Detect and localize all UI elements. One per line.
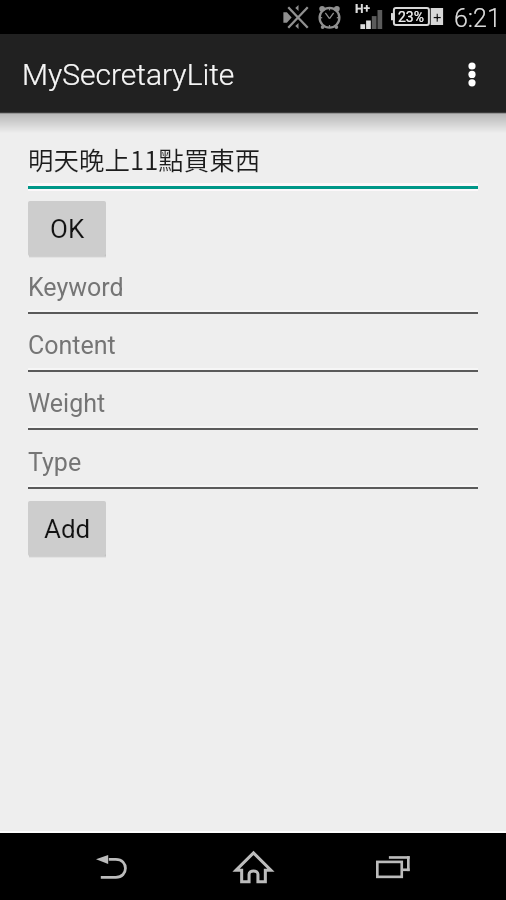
button[interactable]: More options	[444, 34, 500, 112]
button[interactable]: Type	[28, 442, 478, 489]
button[interactable]: Keyword	[28, 267, 478, 314]
button[interactable]: OK	[28, 201, 106, 256]
staticText: 明天晚上11點買東西	[28, 140, 261, 177]
staticText: H+	[355, 2, 371, 16]
staticText: MySecretaryLite	[22, 57, 235, 92]
staticText: Content	[28, 331, 116, 360]
staticText: Weight	[28, 389, 106, 418]
staticText: 6:21	[454, 4, 501, 33]
staticText: +	[433, 9, 442, 26]
staticText: Keyword	[28, 273, 124, 302]
button[interactable]: Back	[78, 833, 146, 900]
button[interactable]: Home	[219, 833, 287, 900]
button[interactable]: Content	[28, 325, 478, 372]
button[interactable]: Add	[28, 501, 106, 556]
button[interactable]: Weight	[28, 383, 478, 430]
staticText: Type	[28, 448, 82, 477]
staticText: OK	[50, 214, 85, 244]
staticText: 23%	[398, 9, 424, 25]
button[interactable]: Recent apps	[359, 833, 427, 900]
staticText: Add	[44, 514, 91, 544]
